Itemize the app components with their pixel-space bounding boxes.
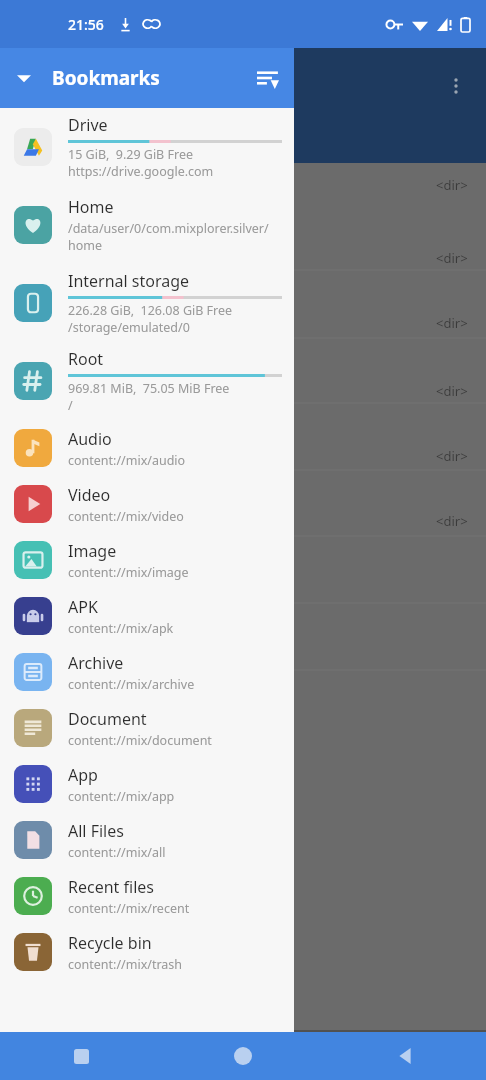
staticText: 21:56 <box>68 15 104 34</box>
button[interactable]: Sort <box>242 52 294 104</box>
staticText: Video <box>68 484 111 506</box>
button[interactable]: Recent files <box>0 868 294 924</box>
button[interactable]: Recent apps <box>0 1032 162 1080</box>
staticText: content://mix/apk <box>68 620 174 637</box>
staticText: /data/user/0/com.mixplorer.silver/ <box>68 220 269 237</box>
button[interactable]: AZ <box>313 1030 408 1080</box>
staticText: content://mix/all <box>68 844 166 861</box>
staticText: APK <box>68 596 98 618</box>
button[interactable]: Drive <box>0 108 294 186</box>
staticText: Audio <box>68 428 112 450</box>
button[interactable]: Root <box>0 342 294 420</box>
button[interactable]: All Files <box>0 812 294 868</box>
button[interactable]: APK <box>0 588 294 644</box>
staticText: content://mix/app <box>68 788 175 805</box>
staticText: Recycle bin <box>68 932 152 954</box>
staticText: content://mix/recent <box>68 900 190 917</box>
button[interactable]: Back <box>324 1032 486 1080</box>
button[interactable]: Archive <box>0 644 294 700</box>
button[interactable]: Image <box>0 532 294 588</box>
staticText: <dir> <box>436 447 468 465</box>
staticText: Home <box>68 196 114 218</box>
button[interactable]: Internal storage <box>0 264 294 342</box>
staticText: <dir> <box>436 512 468 530</box>
button[interactable]: Home <box>162 1032 324 1080</box>
staticText: Document <box>68 708 147 730</box>
staticText: <dir> <box>436 314 468 332</box>
staticText: <dir> <box>436 176 468 194</box>
button[interactable]: Recycle bin <box>0 924 294 980</box>
button[interactable]: More options <box>438 68 474 104</box>
button[interactable]: Collapse <box>0 54 48 102</box>
staticText: Bookmarks <box>52 65 242 91</box>
staticText: / <box>68 397 73 414</box>
staticText: /storage/emulated/0 <box>68 319 190 336</box>
staticText: 15 GiB, 9.29 GiB Free <box>68 146 193 163</box>
button[interactable]: Home <box>0 186 294 264</box>
staticText: content://mix/archive <box>68 676 195 693</box>
staticText: 969.81 MiB, 75.05 MiB Free <box>68 380 230 397</box>
staticText: content://mix/audio <box>68 452 186 469</box>
staticText: Recent files <box>68 876 154 898</box>
staticText: Archive <box>68 652 124 674</box>
button[interactable]: App <box>0 756 294 812</box>
staticText: content://mix/trash <box>68 956 183 973</box>
staticText: All Files <box>68 820 124 842</box>
staticText: <dir> <box>436 249 468 267</box>
button[interactable]: Video <box>0 476 294 532</box>
staticText: content://mix/image <box>68 564 189 581</box>
button[interactable]: Audio <box>0 420 294 476</box>
staticText: Drive <box>68 114 108 136</box>
staticText: content://mix/document <box>68 732 212 749</box>
staticText: https://drive.google.com <box>68 163 214 180</box>
staticText: <dir> <box>436 382 468 400</box>
button[interactable]: Select all <box>408 1030 486 1080</box>
staticText: content://mix/video <box>68 508 184 525</box>
staticText: 226.28 GiB, 126.08 GiB Free <box>68 302 233 319</box>
staticText: App <box>68 764 98 786</box>
staticText: home <box>68 237 103 254</box>
staticText: Root <box>68 348 104 370</box>
button[interactable]: Document <box>0 700 294 756</box>
staticText: Image <box>68 540 117 562</box>
staticText: Internal storage <box>68 270 190 292</box>
